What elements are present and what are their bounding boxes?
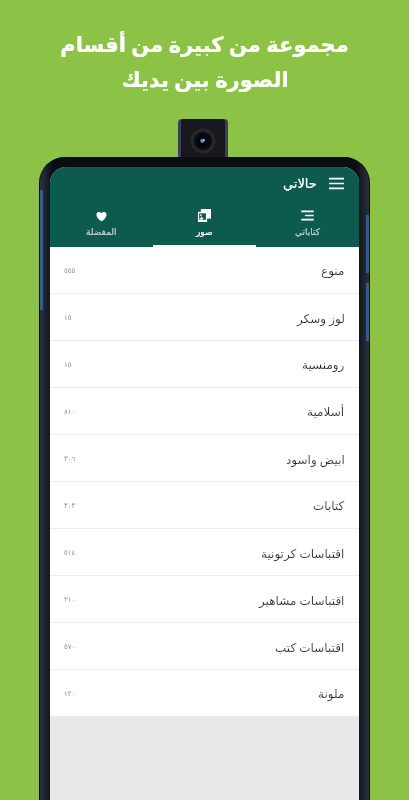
staticText: اقتباسات كرتونية bbox=[261, 545, 345, 561]
staticText: الصورة بين يديك bbox=[121, 65, 289, 94]
staticText: كتابات bbox=[313, 499, 345, 513]
staticText: ٣١٠ bbox=[64, 596, 76, 604]
button[interactable]: لوز وسكر bbox=[50, 294, 359, 341]
button[interactable]: المفضلة bbox=[50, 199, 153, 247]
button[interactable]: كتاباتي bbox=[256, 199, 359, 247]
button[interactable]: منوع bbox=[50, 247, 359, 294]
staticText: ٥٥٥ bbox=[64, 267, 76, 275]
staticText: ٣٠٣ bbox=[64, 502, 76, 510]
button[interactable]: صور bbox=[153, 199, 256, 247]
staticText: صور bbox=[196, 227, 213, 237]
staticText: منوع bbox=[321, 264, 345, 278]
staticText: رومنسية bbox=[302, 358, 345, 372]
staticText: ابيض واسود bbox=[286, 451, 345, 467]
staticText: لوز وسكر bbox=[297, 310, 345, 326]
staticText: ٥١٤ bbox=[64, 549, 76, 557]
staticText: حالاتي bbox=[283, 176, 317, 191]
staticText: اقتباسات مشاهير bbox=[259, 592, 345, 608]
staticText: ١٥ bbox=[64, 361, 72, 369]
staticText: أسلامية bbox=[307, 405, 345, 419]
button[interactable]: اقتباسات كرتونية bbox=[50, 529, 359, 576]
staticText: ٨١٠ bbox=[64, 408, 76, 416]
button[interactable]: ملونة bbox=[50, 670, 359, 717]
staticText: ملونة bbox=[318, 687, 345, 701]
staticText: كتاباتي bbox=[295, 227, 320, 237]
staticText: اقتباسات كتب bbox=[275, 639, 345, 655]
button[interactable]: ابيض واسود bbox=[50, 435, 359, 482]
button[interactable]: اقتباسات كتب bbox=[50, 623, 359, 670]
staticText: ٣٠٦ bbox=[64, 455, 76, 463]
button[interactable]: اقتباسات مشاهير bbox=[50, 576, 359, 623]
button[interactable]: أسلامية bbox=[50, 388, 359, 435]
button[interactable]: كتابات bbox=[50, 482, 359, 529]
staticText: ١٥ bbox=[64, 314, 72, 322]
button[interactable]: رومنسية bbox=[50, 341, 359, 388]
staticText: مجموعة من كبيرة من أقسام bbox=[60, 30, 349, 59]
staticText: ١٢٠ bbox=[64, 690, 76, 698]
button[interactable]: Menu bbox=[323, 170, 349, 196]
staticText: ٥٧٠ bbox=[64, 643, 76, 651]
staticText: المفضلة bbox=[86, 227, 117, 237]
